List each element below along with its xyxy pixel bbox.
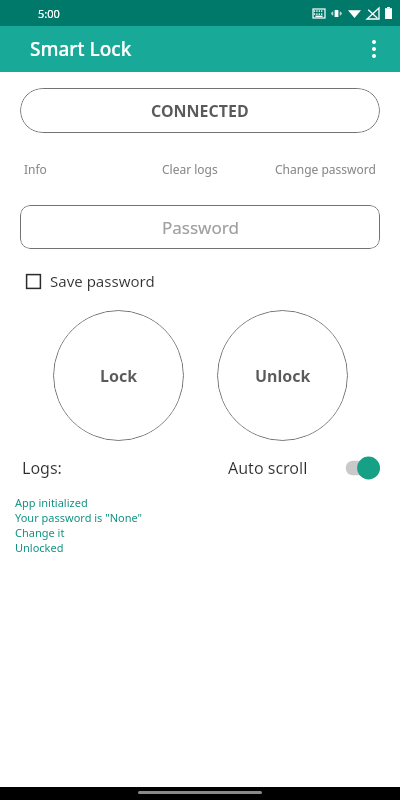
staticText: Unlocked <box>15 540 64 555</box>
button[interactable]: Info <box>24 161 129 177</box>
staticText: Info <box>24 161 47 177</box>
button[interactable]: Unlock <box>217 310 348 441</box>
staticText: Change password <box>275 161 376 177</box>
staticText: Password <box>162 216 239 239</box>
button[interactable]: Clear logs <box>129 161 250 177</box>
button[interactable]: Password <box>20 205 380 249</box>
staticText: App initialized <box>15 495 88 510</box>
staticText: Change it <box>15 525 65 540</box>
button[interactable]: More options <box>354 29 394 69</box>
staticText: Clear logs <box>162 161 218 177</box>
button[interactable]: Auto scroll toggle <box>336 455 380 481</box>
staticText: Save password <box>50 271 155 291</box>
button[interactable]: Save password <box>24 269 157 293</box>
staticText: Logs: <box>22 457 62 479</box>
button[interactable]: Lock <box>53 310 184 441</box>
staticText: Auto scroll <box>228 457 308 479</box>
staticText: Your password is "None" <box>15 510 143 525</box>
staticText: Lock <box>100 365 138 387</box>
button[interactable]: CONNECTED <box>20 88 380 133</box>
staticText: Unlock <box>255 365 311 387</box>
staticText: CONNECTED <box>151 100 249 122</box>
button[interactable]: Change password <box>250 161 376 177</box>
staticText: Smart Lock <box>30 36 132 62</box>
staticText: 5:00 <box>38 6 60 21</box>
